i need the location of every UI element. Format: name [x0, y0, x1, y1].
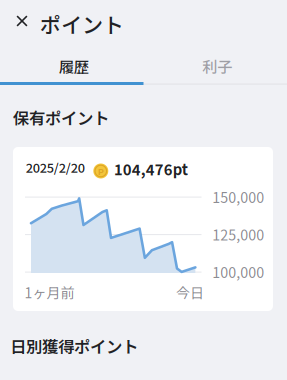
staticText: ポイント: [40, 8, 124, 39]
button[interactable]: Close: [8, 7, 36, 35]
staticText: 今日: [176, 282, 204, 302]
button[interactable]: 利子: [145, 56, 287, 76]
staticText: 履歴: [59, 55, 89, 77]
staticText: 利子: [202, 55, 232, 77]
staticText: 104,476pt: [114, 158, 188, 179]
staticText: 保有ポイント: [13, 105, 109, 129]
staticText: 150,000: [212, 186, 264, 207]
staticText: 125,000: [212, 224, 264, 245]
button[interactable]: 履歴: [2, 56, 145, 76]
staticText: P: [98, 164, 104, 178]
staticText: 日別獲得ポイント: [10, 334, 138, 358]
staticText: 100,000: [212, 261, 264, 282]
staticText: 1ヶ月前: [24, 282, 74, 302]
staticText: 2025/2/20: [26, 158, 85, 176]
